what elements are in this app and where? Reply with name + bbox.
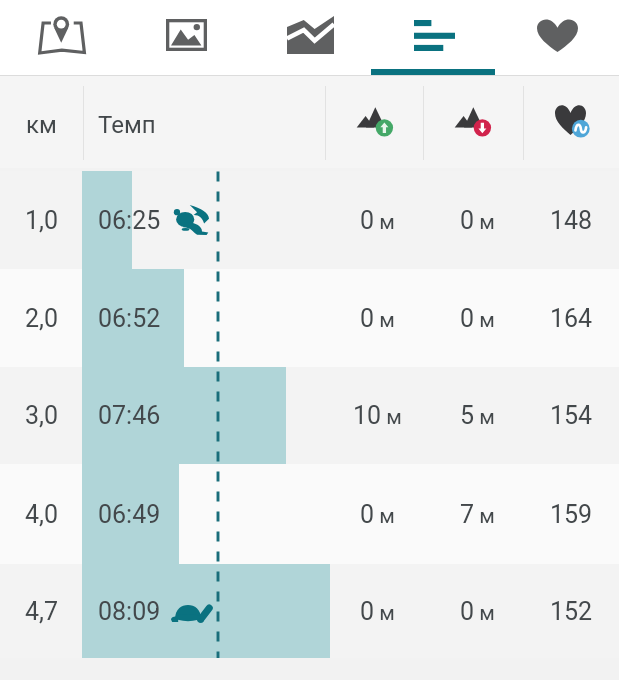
staticText: 164 — [550, 304, 593, 333]
staticText: 07:46 — [98, 401, 161, 430]
staticText: 2,0 — [25, 304, 59, 333]
staticText: 0 м — [460, 304, 495, 333]
staticText: 3,0 — [25, 401, 59, 430]
staticText: 0 м — [360, 304, 395, 333]
staticText: 08:09 — [98, 597, 161, 626]
button[interactable]: Favourite — [496, 0, 619, 70]
staticText: 06:25 — [98, 206, 161, 235]
staticText: 10 м — [353, 401, 402, 430]
button[interactable]: Map — [0, 0, 124, 70]
button[interactable]: 3,0 — [0, 367, 619, 464]
button[interactable]: Photos — [124, 0, 248, 70]
staticText: 0 м — [460, 597, 495, 626]
button[interactable]: Chart — [248, 0, 372, 70]
staticText: 5 м — [460, 401, 495, 430]
staticText: 0 м — [360, 597, 395, 626]
staticText: 0 м — [360, 500, 395, 529]
staticText: км — [26, 111, 57, 139]
staticText: 4,0 — [25, 500, 59, 529]
staticText: 0 м — [360, 206, 395, 235]
button[interactable]: 1,0 — [0, 171, 619, 269]
staticText: 0 м — [460, 206, 495, 235]
button[interactable]: 4,7 — [0, 564, 619, 658]
staticText: 159 — [550, 500, 593, 529]
staticText: 152 — [550, 597, 593, 626]
staticText: Темп — [98, 111, 156, 139]
staticText: 06:52 — [98, 304, 161, 333]
staticText: 4,7 — [25, 597, 59, 626]
staticText: 148 — [550, 206, 593, 235]
button[interactable]: 2,0 — [0, 269, 619, 367]
button[interactable]: 4,0 — [0, 464, 619, 564]
staticText: 06:49 — [98, 500, 161, 529]
staticText: 154 — [550, 401, 593, 430]
staticText: 7 м — [460, 500, 495, 529]
staticText: 1,0 — [25, 206, 59, 235]
button[interactable]: Splits — [372, 0, 496, 70]
